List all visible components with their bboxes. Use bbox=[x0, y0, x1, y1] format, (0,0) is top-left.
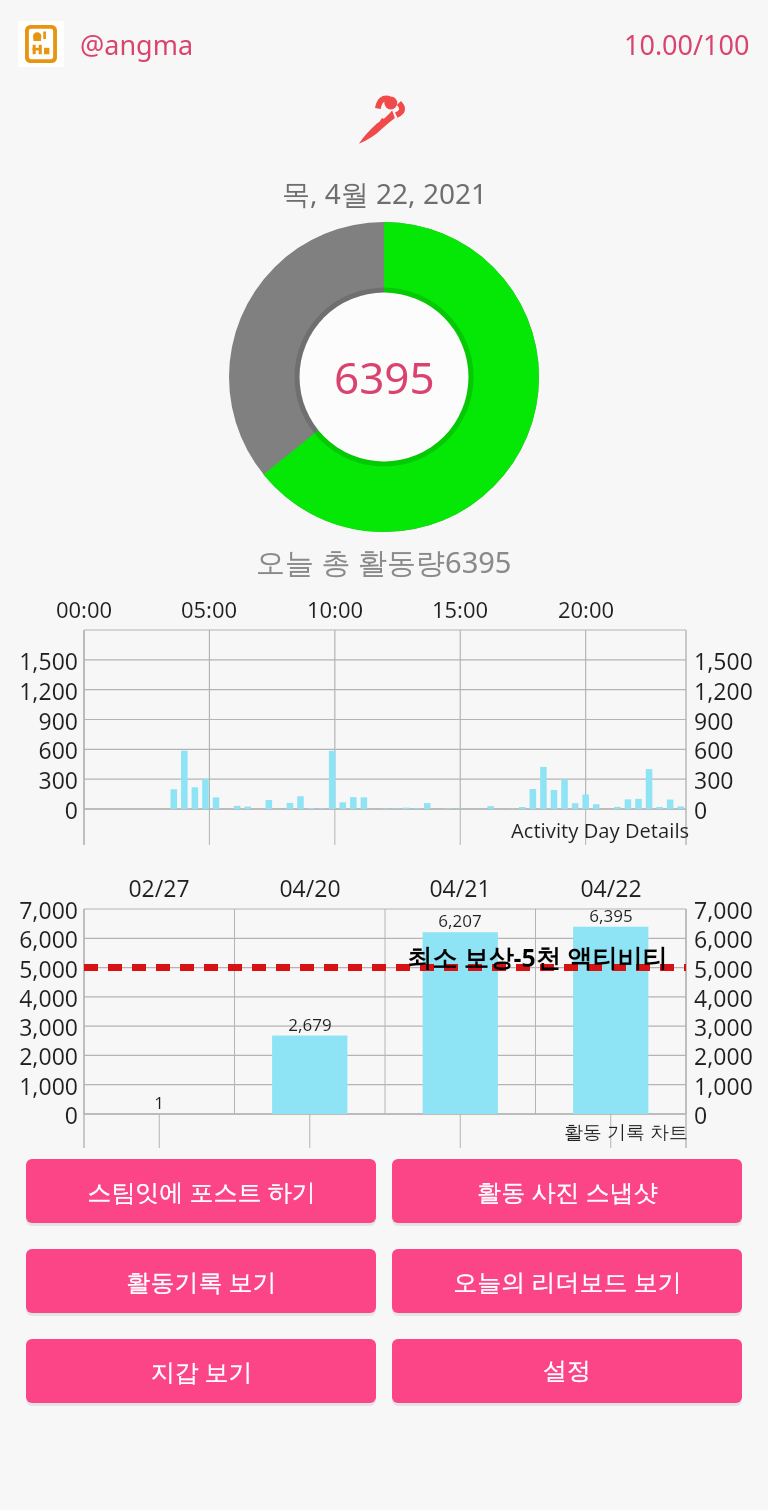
staticText: 10:00 bbox=[295, 594, 375, 624]
button[interactable]: 스팀잇에 포스트 하기 bbox=[26, 1159, 376, 1223]
staticText: 1,000 bbox=[0, 1070, 78, 1101]
staticText: 1,500 bbox=[0, 645, 78, 676]
staticText: 7,000 bbox=[694, 894, 753, 925]
staticText: 7,000 bbox=[0, 894, 78, 925]
staticText: 2,000 bbox=[694, 1040, 753, 1071]
staticText: 15:00 bbox=[420, 594, 500, 624]
staticText: 3,000 bbox=[0, 1011, 78, 1042]
staticText: 6,000 bbox=[694, 923, 753, 954]
staticText: Activity Day Details bbox=[511, 817, 690, 844]
staticText: 활동 기록 차트 bbox=[564, 1119, 688, 1145]
staticText: 600 bbox=[0, 734, 78, 765]
staticText: 1,200 bbox=[694, 675, 753, 706]
staticText: 오늘 총 활동량6395 bbox=[256, 542, 512, 582]
staticText: 0 bbox=[694, 1099, 708, 1130]
staticText: 3,000 bbox=[694, 1011, 753, 1042]
staticText: 04/20 bbox=[265, 872, 355, 903]
button[interactable]: 지갑 보기 bbox=[26, 1339, 376, 1403]
staticText: 지갑 보기 bbox=[150, 1355, 253, 1388]
staticText: 0 bbox=[0, 1099, 78, 1130]
staticText: 활동기록 보기 bbox=[126, 1265, 277, 1298]
staticText: 오늘의 리더보드 보기 bbox=[453, 1265, 682, 1298]
staticText: 4,000 bbox=[0, 982, 78, 1013]
staticText: 최소 보상-5천 액티비티 bbox=[407, 940, 668, 974]
staticText: 1,000 bbox=[694, 1070, 753, 1101]
button[interactable]: Profile bbox=[18, 21, 64, 67]
staticText: 4,000 bbox=[694, 982, 753, 1013]
staticText: 300 bbox=[694, 764, 734, 795]
staticText: 5,000 bbox=[0, 953, 78, 984]
staticText: 900 bbox=[0, 705, 78, 736]
button[interactable]: 활동 사진 스냅샷 bbox=[392, 1159, 742, 1223]
staticText: 20:00 bbox=[546, 594, 626, 624]
staticText: 스팀잇에 포스트 하기 bbox=[87, 1175, 316, 1208]
staticText: 1,200 bbox=[0, 675, 78, 706]
staticText: 설정 bbox=[543, 1356, 591, 1386]
staticText: 300 bbox=[0, 764, 78, 795]
staticText: 00:00 bbox=[44, 594, 124, 624]
button[interactable]: 활동기록 보기 bbox=[26, 1249, 376, 1313]
staticText: 6,395 bbox=[566, 904, 656, 927]
staticText: 2,000 bbox=[0, 1040, 78, 1071]
staticText: 600 bbox=[694, 734, 734, 765]
staticText: 5,000 bbox=[694, 953, 753, 984]
staticText: 05:00 bbox=[169, 594, 249, 624]
staticText: 목, 4월 22, 2021 bbox=[282, 174, 487, 212]
button[interactable]: 오늘의 리더보드 보기 bbox=[392, 1249, 742, 1313]
staticText: 04/21 bbox=[415, 872, 505, 903]
staticText: 6395 bbox=[334, 347, 435, 407]
staticText: 04/22 bbox=[566, 872, 656, 903]
staticText: 1,500 bbox=[694, 645, 753, 676]
staticText: 활동 사진 스냅샷 bbox=[477, 1175, 658, 1208]
staticText: @angma bbox=[80, 26, 194, 63]
staticText: 02/27 bbox=[114, 872, 204, 903]
staticText: 900 bbox=[694, 705, 734, 736]
staticText: 2,679 bbox=[265, 1013, 355, 1036]
button[interactable]: 설정 bbox=[392, 1339, 742, 1403]
staticText: 6,000 bbox=[0, 923, 78, 954]
staticText: 6,207 bbox=[415, 909, 505, 932]
staticText: 1 bbox=[114, 1091, 204, 1114]
staticText: 0 bbox=[694, 794, 708, 825]
staticText: 0 bbox=[0, 794, 78, 825]
staticText: 10.00/100 bbox=[624, 26, 750, 63]
